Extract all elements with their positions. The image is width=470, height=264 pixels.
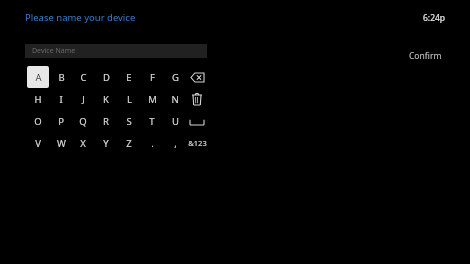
button[interactable]: Device Name [25,44,207,58]
button[interactable]: D [95,66,117,88]
staticText: Please name your device [25,11,136,24]
button[interactable]: Confirm [398,47,453,65]
button[interactable]: Backspace [186,66,208,88]
button[interactable]: J [72,88,94,110]
button[interactable]: Y [95,132,117,154]
button[interactable]: E [118,66,140,88]
staticText: E [126,71,132,84]
staticText: 6:24p [423,12,446,24]
button[interactable]: K [95,88,117,110]
staticText: W [57,137,66,150]
button[interactable]: P [50,110,72,132]
button[interactable]: Symbols and numbers [186,132,208,154]
button[interactable]: Q [72,110,94,132]
staticText: . [151,137,154,150]
staticText: P [58,115,64,128]
button[interactable]: X [72,132,94,154]
button[interactable]: Clear all [186,88,208,110]
staticText: F [150,71,155,84]
button[interactable]: W [50,132,72,154]
staticText: Y [103,137,109,150]
button[interactable]: N [164,88,186,110]
staticText: N [171,93,179,106]
button[interactable]: F [141,66,163,88]
button[interactable]: U [164,110,186,132]
staticText: I [59,93,63,106]
button[interactable]: V [27,132,49,154]
staticText: Q [79,115,87,128]
staticText: B [58,71,65,84]
staticText: S [126,115,132,128]
staticText: L [127,93,132,106]
button[interactable]: H [27,88,49,110]
button[interactable]: B [50,66,72,88]
button[interactable]: C [72,66,94,88]
staticText: J [82,93,85,106]
button[interactable]: . [141,132,163,154]
staticText: V [35,137,41,150]
staticText: Device Name [32,46,76,56]
button[interactable]: I [50,88,72,110]
button[interactable]: S [118,110,140,132]
staticText: T [149,115,155,128]
button[interactable]: G [164,66,186,88]
staticText: C [80,71,87,84]
button[interactable]: R [95,110,117,132]
staticText: Z [126,137,132,150]
staticText: U [172,115,179,128]
staticText: M [148,93,157,106]
staticText: K [103,93,109,106]
button[interactable]: Please name your device [25,11,136,24]
staticText: H [34,93,42,106]
staticText: X [80,137,86,150]
button[interactable]: M [141,88,163,110]
button[interactable]: T [141,110,163,132]
staticText: &123 [188,138,207,148]
button[interactable]: Space [186,110,208,132]
staticText: Confirm [409,50,442,62]
button[interactable]: Z [118,132,140,154]
button[interactable]: A [27,66,49,88]
button[interactable]: L [118,88,140,110]
staticText: G [172,71,179,84]
button[interactable]: , [164,132,186,154]
staticText: A [35,71,42,84]
staticText: R [103,115,109,128]
staticText: , [174,137,177,150]
button[interactable]: O [27,110,49,132]
staticText: O [34,115,42,128]
staticText: D [103,71,110,84]
